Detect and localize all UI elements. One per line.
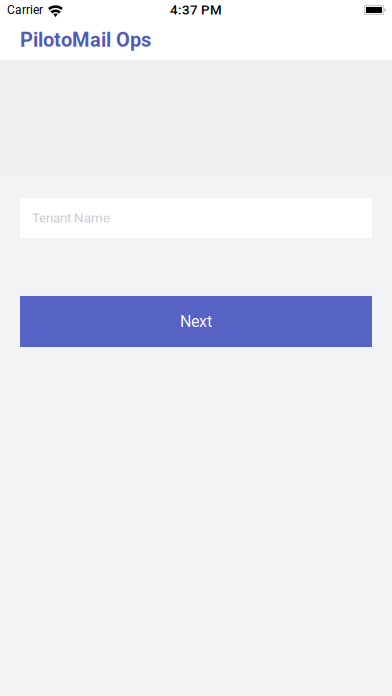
button[interactable]: Next <box>20 296 372 347</box>
button[interactable]: Tenant Name <box>20 198 372 238</box>
staticText: Carrier <box>7 3 43 17</box>
staticText: 4:37 PM <box>170 2 222 18</box>
staticText: Tenant Name <box>32 210 110 226</box>
staticText: PilotoMail Ops <box>20 28 151 52</box>
staticText: Next <box>180 312 212 331</box>
